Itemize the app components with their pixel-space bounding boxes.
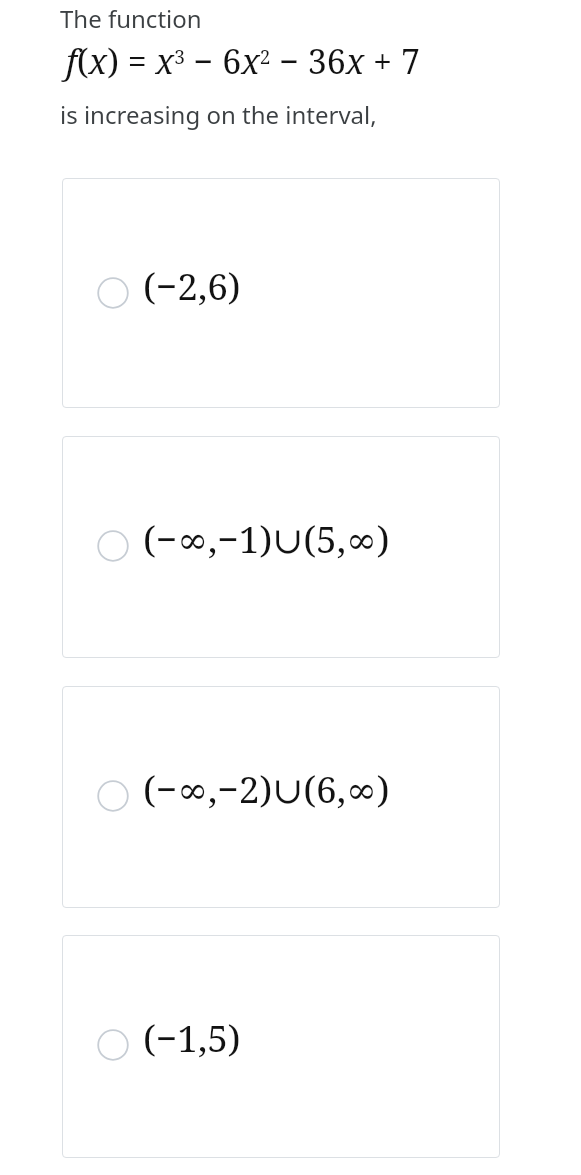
staticText: (−1,5) (143, 1012, 241, 1062)
staticText: f(x) = x3 − 6x2 − 36x + 7 (66, 38, 420, 84)
staticText: The function (60, 2, 202, 35)
button[interactable]: Select this answer (97, 530, 129, 562)
button[interactable] (62, 686, 500, 908)
staticText: (−∞,−2)∪(6,∞) (143, 763, 390, 813)
button[interactable] (62, 436, 500, 658)
button[interactable]: Select this answer (97, 1029, 129, 1061)
button[interactable] (62, 935, 500, 1158)
staticText: (−∞,−1)∪(5,∞) (143, 513, 390, 563)
button[interactable]: Select this answer (97, 277, 129, 309)
button[interactable] (62, 178, 500, 408)
staticText: (−2,6) (143, 260, 241, 310)
button[interactable]: Select this answer (97, 780, 129, 812)
staticText: is increasing on the interval, (60, 98, 377, 131)
